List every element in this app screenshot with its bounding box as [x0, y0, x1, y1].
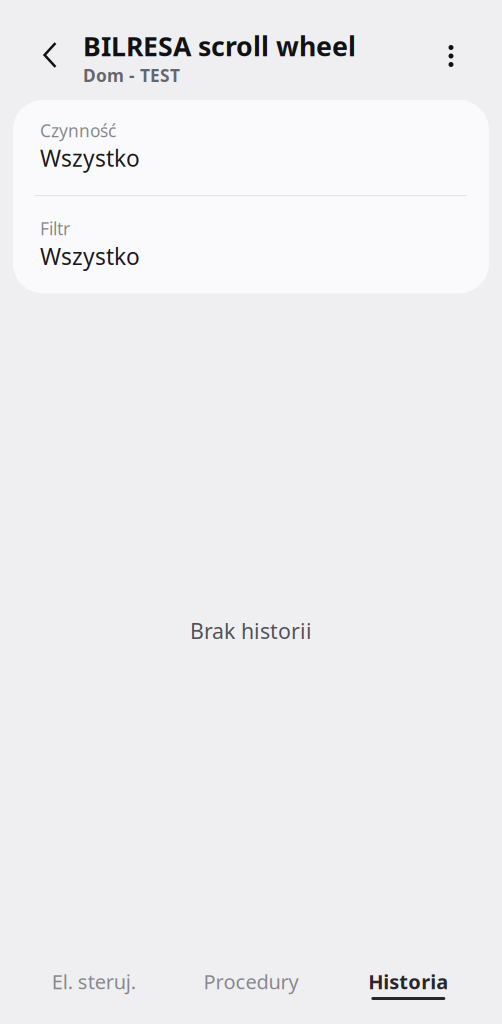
button[interactable]: Procedury: [172, 968, 330, 1000]
button[interactable]: Historia: [330, 968, 487, 1000]
button[interactable]: El. steruj.: [15, 968, 172, 1000]
staticText: Brak historii: [190, 616, 312, 645]
button[interactable]: Filtr: [13, 196, 489, 293]
staticText: Filtr: [40, 217, 70, 240]
staticText: El. steruj.: [52, 968, 136, 995]
staticText: Wszystko: [40, 241, 140, 271]
button[interactable]: More options: [427, 5, 475, 95]
staticText: Historia: [368, 968, 448, 995]
button[interactable]: Back: [22, 5, 78, 95]
staticText: Wszystko: [40, 143, 140, 173]
staticText: Czynność: [40, 119, 116, 142]
staticText: Dom - TEST: [83, 64, 180, 87]
staticText: BILRESA scroll wheel: [83, 28, 356, 64]
button[interactable]: Czynność: [13, 100, 489, 195]
staticText: Procedury: [203, 968, 298, 995]
